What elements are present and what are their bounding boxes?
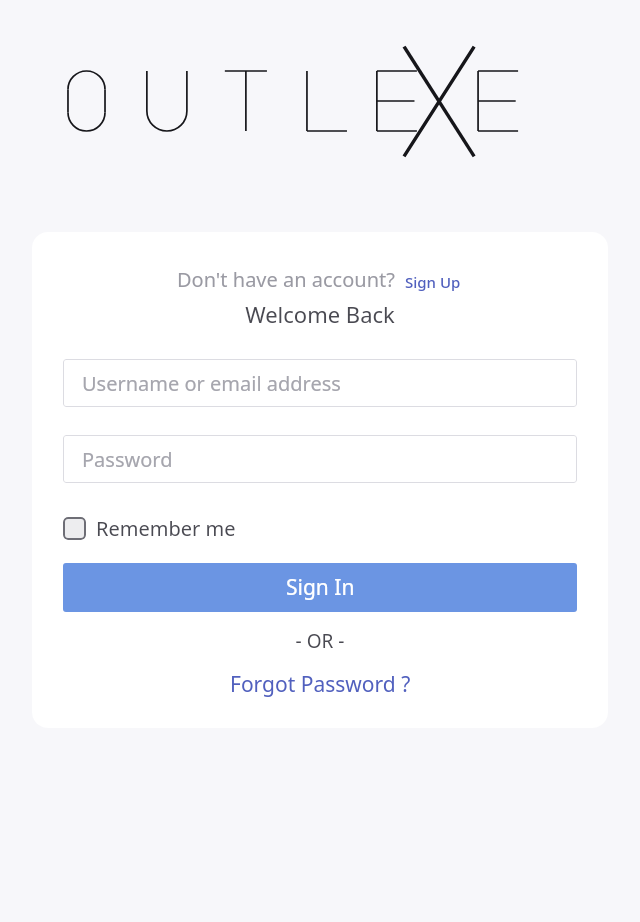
button[interactable]: Remember me <box>63 513 244 544</box>
staticText: Forgot Password ? <box>230 670 411 699</box>
staticText: Don't have an account? <box>177 266 395 293</box>
button[interactable]: Username or email address <box>63 359 577 407</box>
staticText: Welcome Back <box>32 299 608 329</box>
staticText: Sign Up <box>405 272 461 292</box>
button[interactable]: Sign Up <box>403 271 463 293</box>
button[interactable]: Password <box>63 435 577 483</box>
staticText: Sign In <box>286 573 355 602</box>
staticText: Password <box>82 446 173 473</box>
staticText: Remember me <box>96 515 236 542</box>
staticText: - OR - <box>32 628 608 654</box>
other: Outlexe logo <box>62 42 522 162</box>
button[interactable]: Forgot Password ? <box>224 668 417 701</box>
button[interactable]: Sign In <box>63 563 577 612</box>
staticText: Username or email address <box>82 370 341 397</box>
